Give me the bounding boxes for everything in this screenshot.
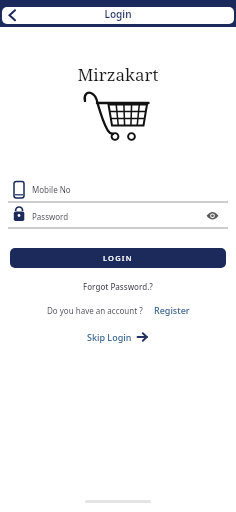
button[interactable]: Skip Login bbox=[87, 331, 149, 343]
staticText: Login bbox=[2, 7, 234, 21]
staticText: Mirzakart bbox=[0, 63, 236, 86]
button[interactable]: Register bbox=[154, 304, 190, 316]
staticText: Mobile No bbox=[32, 184, 71, 195]
button[interactable] bbox=[202, 207, 224, 226]
staticText: Skip Login bbox=[87, 331, 132, 343]
button[interactable] bbox=[2, 7, 24, 24]
button[interactable]: Password bbox=[8, 206, 228, 228]
staticText: Password bbox=[32, 211, 69, 222]
button[interactable]: LOGIN bbox=[10, 248, 226, 268]
button[interactable]: Mobile No bbox=[8, 180, 228, 202]
staticText: LOGIN bbox=[103, 253, 133, 263]
staticText: Do you have an account ? bbox=[47, 305, 143, 316]
button[interactable]: Forgot Password.? bbox=[83, 281, 153, 292]
